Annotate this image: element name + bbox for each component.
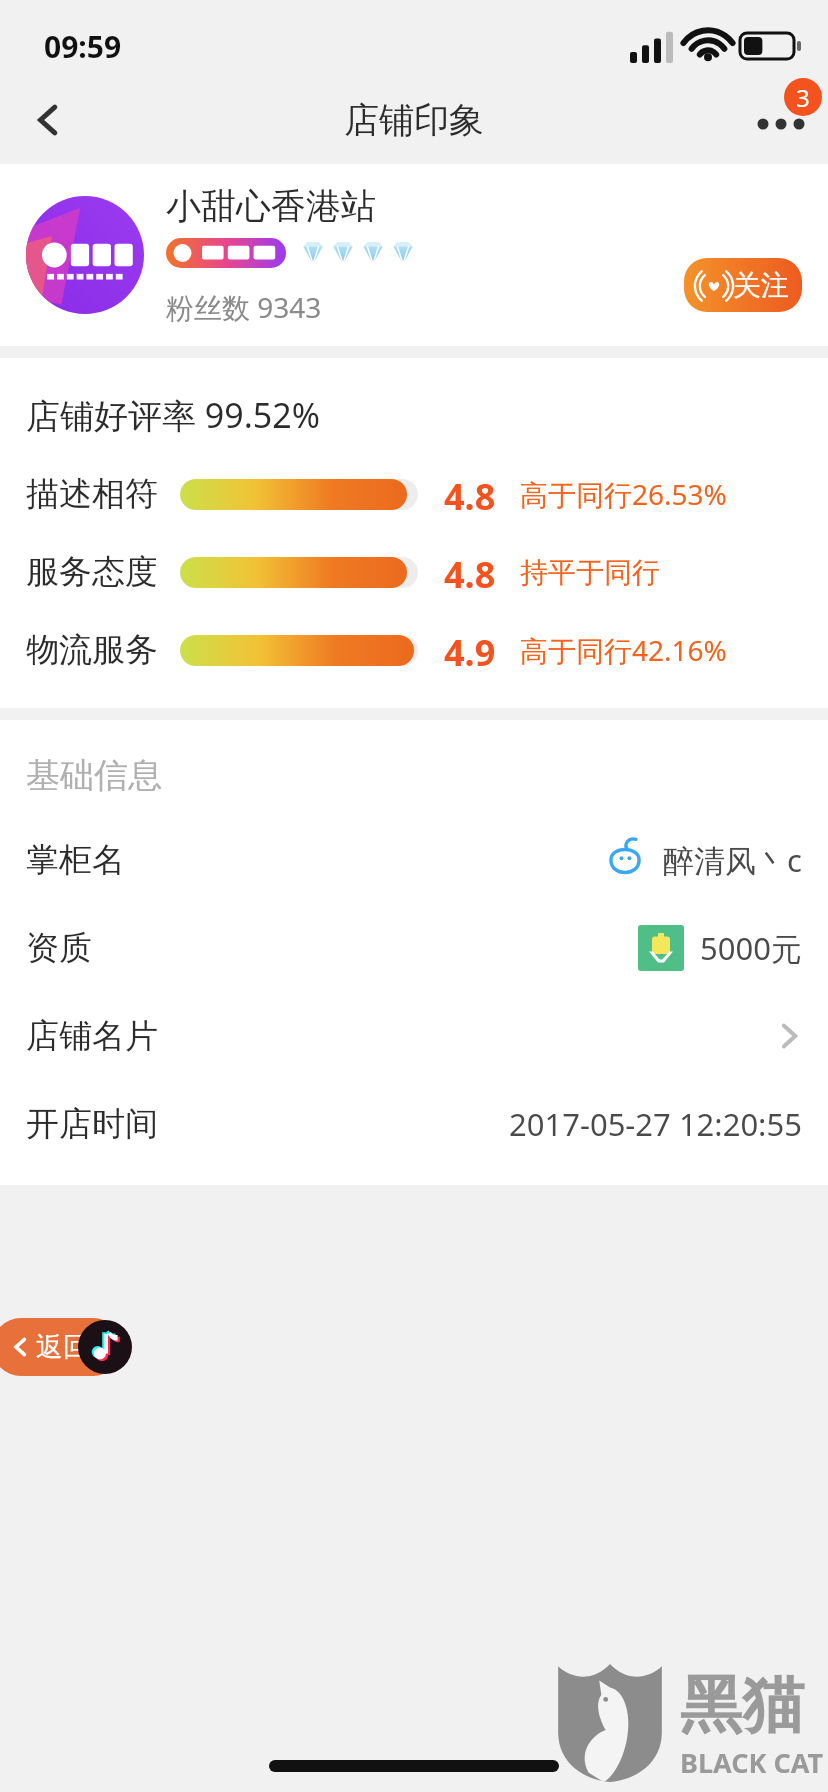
staticText: 持平于同行: [520, 555, 660, 590]
staticText: 3: [796, 81, 810, 114]
staticText: 小甜心香港站: [166, 184, 376, 228]
button[interactable]: 关注: [684, 258, 802, 312]
staticText: 服务态度: [26, 551, 158, 593]
staticText: 资质: [26, 927, 92, 969]
staticText: 基础信息: [26, 754, 162, 797]
staticText: 09:59: [44, 26, 122, 67]
staticText: 粉丝数 9343: [166, 288, 322, 326]
staticText: 描述相符: [26, 473, 158, 515]
other: TikTok: [78, 1320, 132, 1374]
staticText: 店铺好评率 99.52%: [26, 392, 320, 438]
staticText: BLACK CAT: [680, 1744, 824, 1781]
button[interactable]: 返回: [0, 1318, 122, 1376]
staticText: 物流服务: [26, 629, 158, 671]
staticText: 开店时间: [26, 1103, 158, 1145]
staticText: 黑猫: [680, 1666, 804, 1744]
staticText: 4.9: [444, 628, 496, 672]
staticText: 4.8: [444, 550, 496, 594]
button[interactable]: 店铺名片: [0, 1011, 828, 1061]
staticText: 5000元: [700, 927, 802, 969]
button[interactable]: More options: [718, 86, 828, 154]
staticText: 店铺印象: [344, 98, 484, 142]
staticText: 醉清风丶c: [663, 839, 802, 881]
staticText: 4.8: [444, 472, 496, 516]
staticText: 店铺名片: [26, 1015, 158, 1057]
staticText: 高于同行42.16%: [520, 631, 727, 669]
button[interactable]: Back: [0, 86, 96, 154]
staticText: 2017-05-27 12:20:55: [509, 1103, 802, 1145]
staticText: 关注: [733, 268, 789, 303]
staticText: 返回: [36, 1330, 90, 1364]
staticText: 高于同行26.53%: [520, 475, 727, 513]
staticText: 掌柜名: [26, 839, 125, 881]
